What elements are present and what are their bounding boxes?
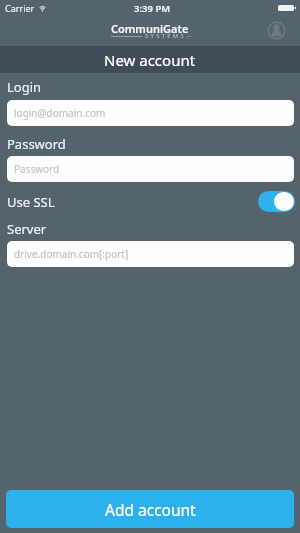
staticText: Carrier (5, 2, 35, 14)
button[interactable]: Use SSL switch (258, 191, 295, 212)
staticText: Login (7, 78, 42, 96)
staticText: Password (7, 135, 66, 153)
button[interactable]: Add account (6, 490, 294, 528)
button[interactable]: drive.domain.com[:port] (7, 241, 294, 267)
button[interactable]: Password (7, 156, 294, 182)
staticText: drive.domain.com[:port] (14, 247, 129, 261)
staticText: Server (7, 220, 47, 238)
staticText: login@domain.com (14, 106, 106, 120)
staticText: New account (104, 50, 196, 70)
staticText: CommuniGate (111, 21, 189, 36)
button[interactable]: Account (265, 19, 288, 42)
staticText: Password (14, 162, 60, 176)
button[interactable]: Use SSL (7, 191, 294, 212)
staticText: 3:39 PM (134, 2, 171, 15)
button[interactable]: login@domain.com (7, 100, 294, 126)
staticText: Use SSL (7, 193, 55, 211)
staticText: SYSTEMS (145, 32, 187, 40)
staticText: Add account (105, 499, 196, 520)
